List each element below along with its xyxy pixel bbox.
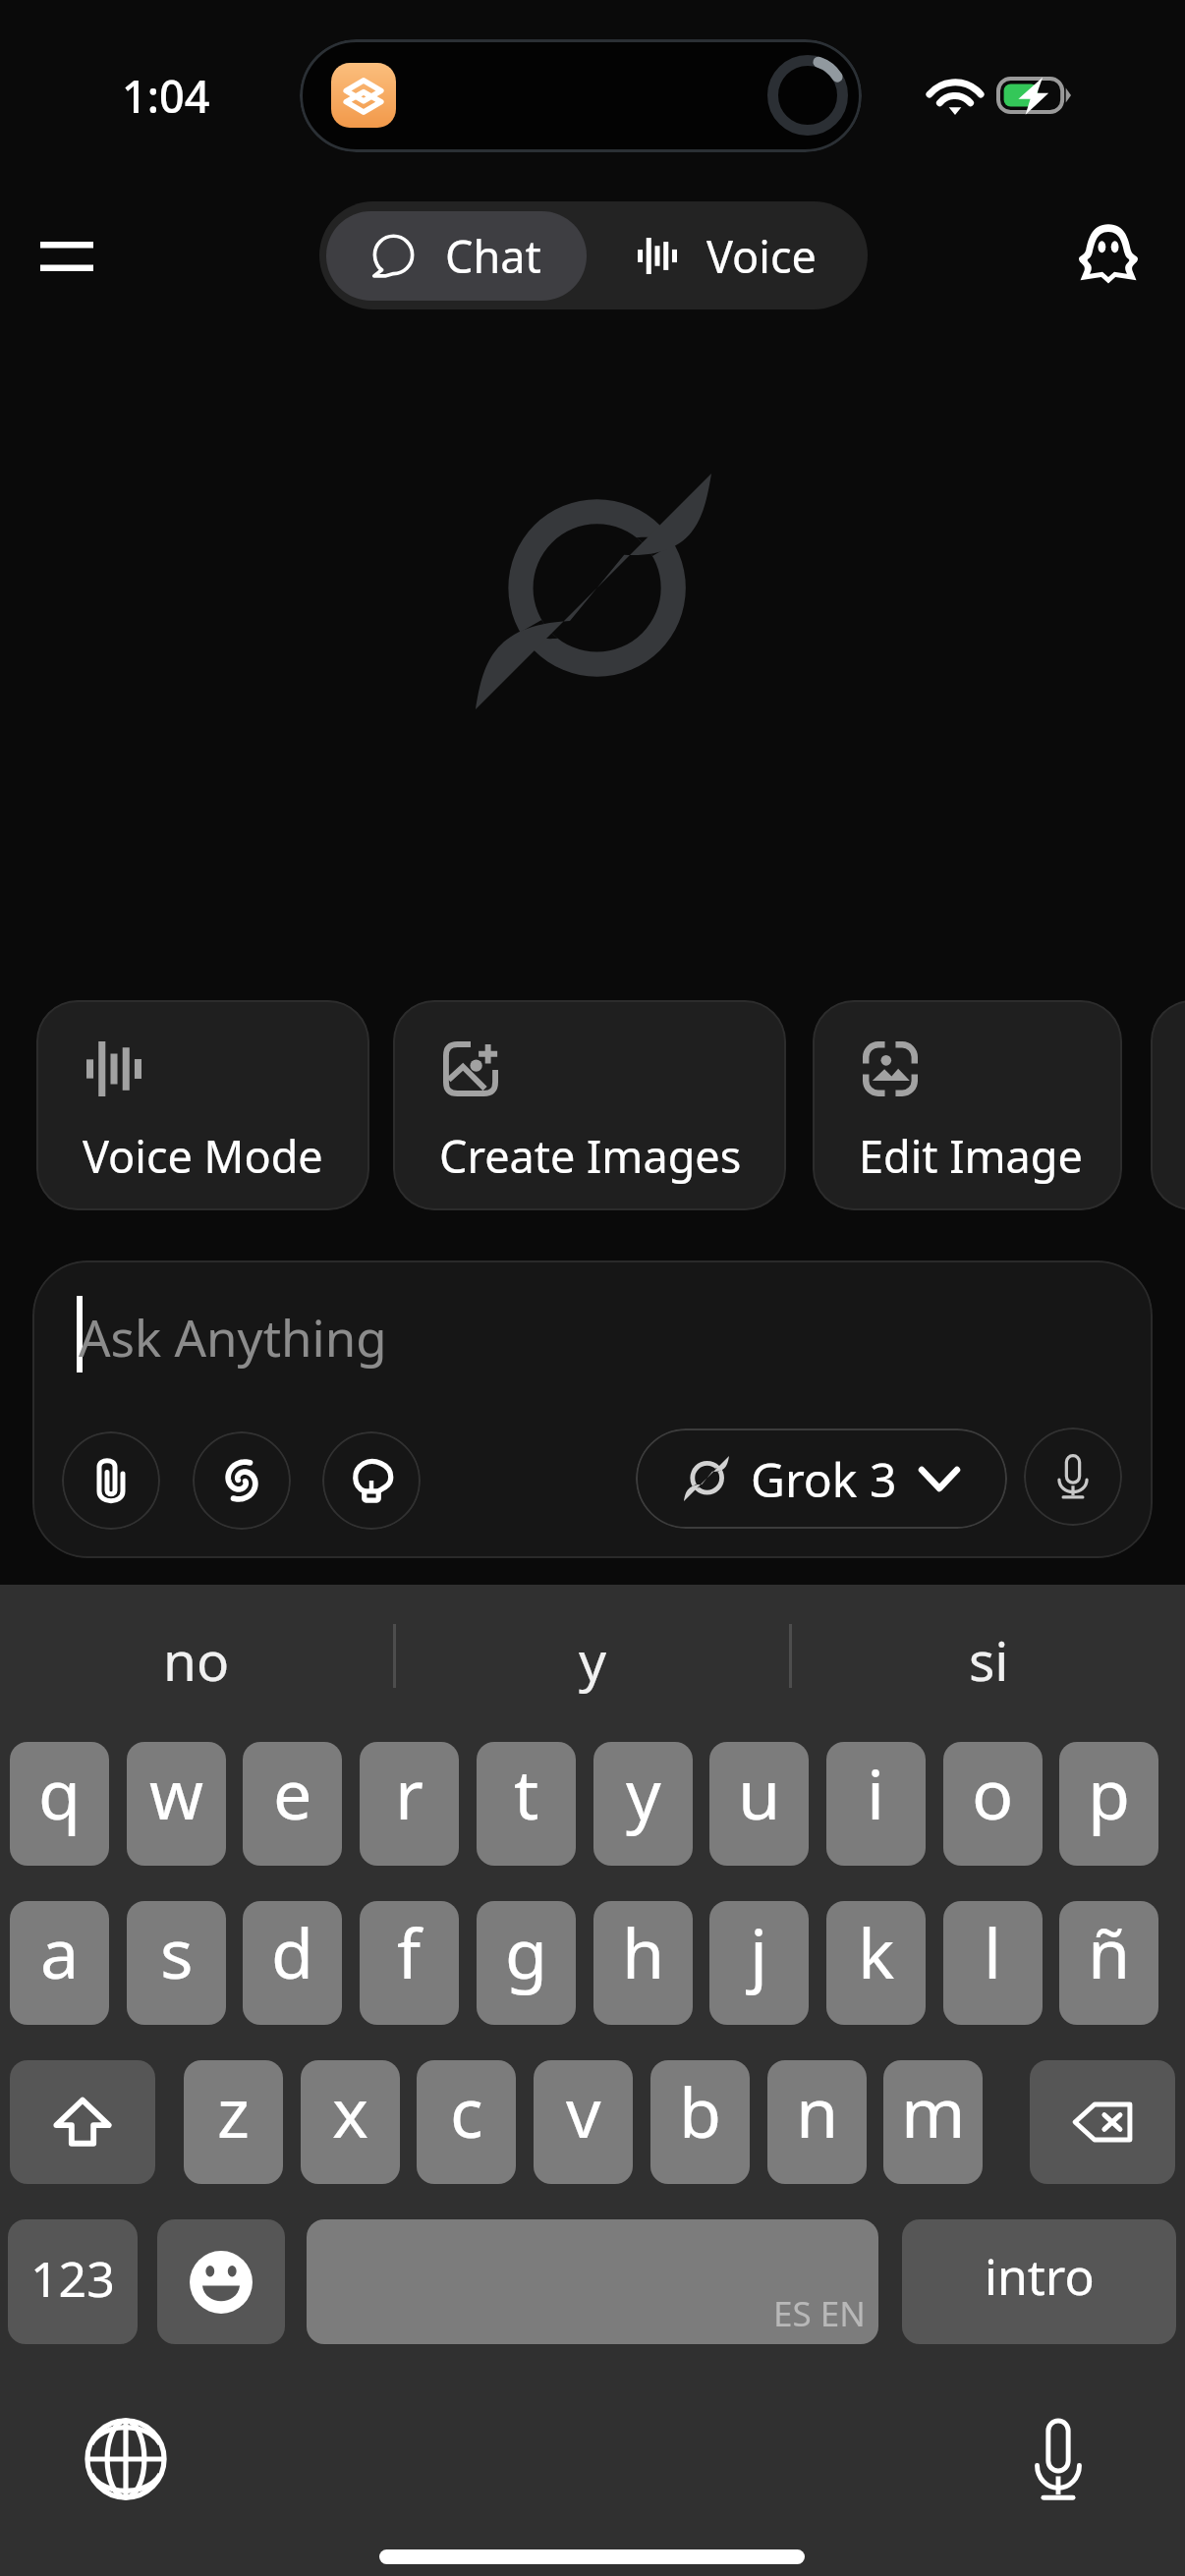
staticText: z bbox=[217, 2064, 250, 2157]
staticText: o bbox=[972, 1746, 1014, 1839]
button[interactable]: x bbox=[301, 2060, 400, 2184]
staticText: s bbox=[160, 1905, 194, 1998]
button[interactable]: Voice typing bbox=[1008, 2409, 1108, 2509]
staticText: i bbox=[867, 1746, 885, 1839]
staticText: 1:04 bbox=[122, 66, 210, 126]
staticText: e bbox=[273, 1746, 312, 1839]
staticText: l bbox=[984, 1905, 1002, 1998]
button[interactable]: Think bbox=[322, 1431, 421, 1530]
button[interactable] bbox=[1151, 1000, 1185, 1210]
staticText: y bbox=[626, 1746, 661, 1839]
button[interactable]: j bbox=[709, 1901, 809, 2025]
button[interactable]: o bbox=[943, 1742, 1043, 1866]
button[interactable]: Change language bbox=[76, 2409, 176, 2509]
button[interactable]: r bbox=[360, 1742, 459, 1866]
staticText: m bbox=[901, 2064, 966, 2157]
button[interactable]: DeepSearch bbox=[193, 1431, 291, 1530]
staticText: y bbox=[579, 1623, 607, 1697]
button[interactable]: 123 bbox=[8, 2219, 138, 2344]
button[interactable]: s bbox=[127, 1901, 226, 2025]
staticText: g bbox=[505, 1905, 548, 1998]
button[interactable]: b bbox=[650, 2060, 750, 2184]
button[interactable]: g bbox=[477, 1901, 576, 2025]
button[interactable]: ñ bbox=[1059, 1901, 1158, 2025]
staticText: q bbox=[38, 1746, 82, 1839]
button[interactable]: Private chat bbox=[1061, 205, 1156, 300]
button[interactable]: h bbox=[593, 1901, 693, 2025]
button[interactable]: w bbox=[127, 1742, 226, 1866]
staticText: v bbox=[566, 2064, 601, 2157]
staticText: Edit Image bbox=[859, 1126, 1083, 1186]
staticText: Grok 3 bbox=[751, 1447, 897, 1511]
staticText: a bbox=[40, 1905, 80, 1998]
button[interactable]: t bbox=[477, 1742, 576, 1866]
button[interactable]: y bbox=[593, 1742, 693, 1866]
staticText: h bbox=[622, 1905, 665, 1998]
button[interactable]: y bbox=[396, 1585, 789, 1726]
button[interactable]: l bbox=[943, 1901, 1043, 2025]
button[interactable]: a bbox=[10, 1901, 109, 2025]
staticText: k bbox=[858, 1905, 895, 1998]
staticText: j bbox=[750, 1905, 768, 1998]
staticText: u bbox=[738, 1746, 781, 1839]
staticText: 123 bbox=[30, 2245, 115, 2312]
button[interactable]: Attach file bbox=[62, 1431, 160, 1530]
staticText: Chat bbox=[445, 226, 541, 286]
button[interactable]: z bbox=[184, 2060, 283, 2184]
staticText: ñ bbox=[1088, 1905, 1131, 1998]
staticText: no bbox=[163, 1623, 230, 1697]
staticText: t bbox=[514, 1746, 539, 1839]
button[interactable]: d bbox=[243, 1901, 342, 2025]
staticText: Create Images bbox=[439, 1126, 742, 1186]
button[interactable]: e bbox=[243, 1742, 342, 1866]
button[interactable]: Grok 3 bbox=[636, 1428, 1007, 1529]
button[interactable]: Create Images bbox=[393, 1000, 786, 1210]
staticText: d bbox=[271, 1905, 314, 1998]
button[interactable]: Menu bbox=[18, 207, 116, 306]
button[interactable]: m bbox=[883, 2060, 983, 2184]
button[interactable]: Chat bbox=[326, 211, 587, 301]
button[interactable]: v bbox=[534, 2060, 633, 2184]
button[interactable]: k bbox=[826, 1901, 926, 2025]
button[interactable]: no bbox=[0, 1585, 393, 1726]
button[interactable]: Voice Mode bbox=[36, 1000, 369, 1210]
button[interactable]: Space bbox=[307, 2219, 878, 2344]
button[interactable]: Backspace bbox=[1030, 2060, 1175, 2184]
button[interactable]: si bbox=[792, 1585, 1185, 1726]
staticText: intro bbox=[985, 2243, 1095, 2310]
staticText: w bbox=[149, 1746, 204, 1839]
button[interactable]: intro bbox=[902, 2219, 1176, 2344]
button[interactable]: Voice input bbox=[1024, 1428, 1122, 1526]
button[interactable]: q bbox=[10, 1742, 109, 1866]
staticText: Voice Mode bbox=[83, 1126, 323, 1186]
staticText: Ask Anything bbox=[79, 1303, 387, 1371]
button[interactable]: n bbox=[767, 2060, 867, 2184]
staticText: Voice bbox=[706, 226, 817, 286]
button[interactable]: f bbox=[360, 1901, 459, 2025]
staticText: si bbox=[969, 1623, 1009, 1697]
staticText: c bbox=[450, 2064, 483, 2157]
staticText: b bbox=[679, 2064, 722, 2157]
button[interactable]: Edit Image bbox=[813, 1000, 1122, 1210]
button[interactable]: Emoji bbox=[157, 2219, 285, 2344]
button[interactable]: Voice bbox=[587, 201, 868, 309]
staticText: f bbox=[397, 1905, 422, 1998]
staticText: p bbox=[1088, 1746, 1131, 1839]
staticText: x bbox=[332, 2064, 369, 2157]
button[interactable]: i bbox=[826, 1742, 926, 1866]
button[interactable]: Shift bbox=[10, 2060, 155, 2184]
button[interactable]: p bbox=[1059, 1742, 1158, 1866]
staticText: n bbox=[796, 2064, 839, 2157]
staticText: ES EN bbox=[773, 2290, 866, 2337]
button[interactable]: u bbox=[709, 1742, 809, 1866]
button[interactable]: c bbox=[417, 2060, 516, 2184]
staticText: r bbox=[395, 1746, 423, 1839]
